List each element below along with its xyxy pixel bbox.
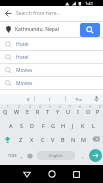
button[interactable]: The [66, 94, 90, 104]
staticText: L [92, 122, 95, 129]
button[interactable] [39, 165, 64, 183]
staticText: R [36, 108, 40, 115]
button[interactable] [14, 165, 39, 183]
button[interactable]: N [68, 132, 78, 146]
button[interactable]: Kathmandu, Nepal [0, 22, 103, 37]
staticText: , [21, 152, 23, 159]
staticText: D [30, 122, 35, 129]
staticText: I [49, 97, 51, 102]
staticText: G [51, 122, 56, 129]
staticText: V [51, 136, 55, 143]
staticText: English [49, 153, 63, 158]
button[interactable]: V [48, 132, 58, 146]
button[interactable]: M [78, 132, 88, 146]
button[interactable]: Q [0, 105, 11, 118]
staticText: 8 [79, 105, 81, 109]
button[interactable]: X [26, 132, 37, 146]
staticText: The [75, 97, 82, 102]
button[interactable]: R [33, 105, 43, 118]
button[interactable]: Movies [0, 77, 103, 90]
staticText: 1 [7, 105, 9, 109]
button[interactable]: A [5, 118, 16, 132]
staticText: T [46, 108, 50, 115]
staticText: Kathmandu, Nepal [15, 26, 59, 33]
button[interactable]: T [43, 105, 53, 118]
button[interactable] [25, 146, 34, 165]
staticText: ?123 [8, 153, 17, 158]
button[interactable]: C [37, 132, 48, 146]
staticText: 4 [39, 105, 41, 109]
staticText: Movies [16, 80, 33, 87]
staticText: 9 [89, 105, 91, 109]
staticText: 7 [69, 105, 71, 109]
staticText: P [96, 108, 100, 115]
button[interactable]: B [58, 132, 68, 146]
staticText: S [20, 122, 24, 129]
button[interactable] [0, 132, 15, 146]
staticText: J [72, 122, 74, 129]
staticText: Hotel [16, 54, 29, 61]
button[interactable]: Y [53, 105, 63, 118]
staticText: O [86, 108, 91, 115]
button[interactable]: Movies [0, 64, 103, 77]
button[interactable]: Hotel [0, 51, 103, 64]
staticText: 0 [99, 105, 101, 109]
button[interactable] [88, 146, 103, 165]
button[interactable] [5, 10, 12, 17]
staticText: If [27, 97, 30, 102]
staticText: Q [3, 108, 8, 115]
staticText: K [81, 122, 85, 129]
button[interactable]: D [27, 118, 38, 132]
button[interactable]: ?123 [0, 146, 18, 165]
button[interactable]: If [0, 94, 34, 104]
button[interactable]: H [58, 118, 68, 132]
staticText: N [71, 136, 76, 143]
button[interactable]: . [78, 146, 88, 165]
button[interactable]: S [16, 118, 27, 132]
button[interactable]: E [22, 105, 33, 118]
staticText: M [81, 136, 86, 143]
staticText: E [26, 108, 30, 115]
staticText: Z [19, 136, 23, 143]
button[interactable] [88, 132, 103, 146]
button[interactable]: W [11, 105, 22, 118]
button[interactable]: L [88, 118, 98, 132]
staticText: H [61, 122, 66, 129]
button[interactable]: I [35, 94, 65, 104]
staticText: 3 [29, 105, 31, 109]
staticText: I [77, 108, 79, 115]
staticText: 1:41 [85, 1, 93, 6]
button[interactable]: F [38, 118, 48, 132]
button[interactable]: K [78, 118, 88, 132]
button[interactable]: U [63, 105, 73, 118]
staticText: C [41, 136, 45, 143]
button[interactable]: J [68, 118, 78, 132]
button[interactable]: O [83, 105, 93, 118]
staticText: . [82, 152, 84, 159]
button[interactable]: Z [15, 132, 26, 146]
staticText: A [9, 122, 13, 129]
button[interactable]: Hotel [0, 38, 103, 51]
staticText: 6 [59, 105, 61, 109]
staticText: 2 [18, 105, 20, 109]
button[interactable]: Search from here... [0, 6, 103, 21]
button[interactable]: I [73, 105, 83, 118]
staticText: B [61, 136, 65, 143]
staticText: F [42, 122, 45, 129]
staticText: Movies [16, 67, 33, 74]
button[interactable]: English [34, 146, 78, 165]
button[interactable] [90, 94, 103, 104]
staticText: X [30, 136, 34, 143]
button[interactable]: G [48, 118, 58, 132]
button[interactable]: , [18, 146, 25, 165]
staticText: U [66, 108, 71, 115]
staticText: W [14, 108, 20, 115]
button[interactable] [64, 165, 89, 183]
staticText: 5 [49, 105, 51, 109]
staticText: Hotel [16, 41, 29, 48]
staticText: Search from here... [16, 10, 61, 17]
button[interactable]: P [93, 105, 103, 118]
staticText: Y [56, 108, 60, 115]
button[interactable] [80, 23, 100, 37]
